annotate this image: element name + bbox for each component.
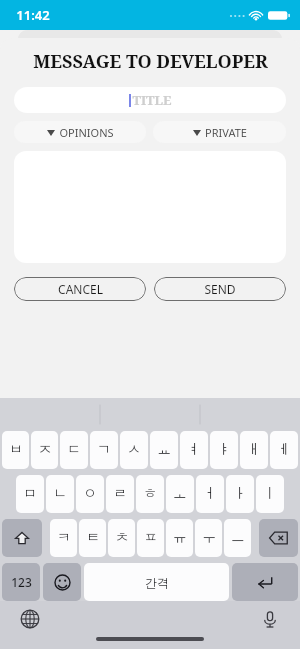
staticText: ㅓ bbox=[203, 485, 217, 503]
button[interactable]: CANCEL bbox=[14, 277, 146, 301]
button[interactable]: Change language bbox=[20, 609, 40, 629]
button[interactable]: ㅠ bbox=[166, 519, 193, 557]
staticText: ㄱ bbox=[97, 441, 111, 459]
button[interactable]: ㅁ bbox=[16, 475, 44, 513]
staticText: CANCEL bbox=[58, 281, 103, 297]
button[interactable]: ㅗ bbox=[166, 475, 194, 513]
button[interactable]: Emoji bbox=[43, 563, 81, 601]
staticText: ㅡ bbox=[231, 529, 245, 547]
button[interactable]: 간격 bbox=[84, 563, 229, 601]
staticText: MESSAGE TO DEVELOPER bbox=[33, 49, 268, 74]
button[interactable]: ㅔ bbox=[270, 431, 298, 469]
staticText: ㅍ bbox=[144, 529, 158, 547]
button[interactable]: ㅕ bbox=[180, 431, 208, 469]
button[interactable]: PRIVATE bbox=[153, 121, 286, 143]
staticText: ㅅ bbox=[127, 441, 141, 459]
staticText: ㅊ bbox=[115, 529, 129, 547]
button[interactable]: ㄴ bbox=[46, 475, 74, 513]
button[interactable]: ㅓ bbox=[196, 475, 224, 513]
staticText: ㅠ bbox=[173, 529, 187, 547]
button[interactable]: ㅎ bbox=[136, 475, 164, 513]
staticText: ㄴ bbox=[53, 485, 67, 503]
staticText: 123 bbox=[11, 574, 32, 590]
staticText: ㅌ bbox=[86, 529, 100, 547]
button[interactable]: ㅡ bbox=[224, 519, 251, 557]
staticText: 간격 bbox=[145, 575, 169, 590]
button[interactable]: Shift bbox=[2, 519, 42, 557]
button[interactable]: Voice input bbox=[260, 609, 280, 629]
staticText: ㅣ bbox=[263, 485, 277, 503]
button[interactable]: Backspace bbox=[259, 519, 298, 557]
staticText: ㅔ bbox=[277, 441, 291, 459]
button[interactable]: ㅛ bbox=[150, 431, 178, 469]
button[interactable]: ㅌ bbox=[79, 519, 106, 557]
button[interactable]: TITLE bbox=[14, 87, 286, 113]
button[interactable]: ㄱ bbox=[90, 431, 118, 469]
staticText: ㅛ bbox=[157, 441, 171, 459]
staticText: ㅗ bbox=[173, 485, 187, 503]
staticText: ㅏ bbox=[233, 485, 247, 503]
staticText: ㅎ bbox=[143, 485, 157, 503]
button[interactable]: ㅋ bbox=[50, 519, 77, 557]
staticText: ㅈ bbox=[38, 441, 52, 459]
button[interactable]: ㅑ bbox=[210, 431, 238, 469]
staticText: PRIVATE bbox=[205, 125, 247, 140]
staticText: ㅁ bbox=[23, 485, 37, 503]
button[interactable]: ㅜ bbox=[195, 519, 222, 557]
button[interactable]: OPINIONS bbox=[14, 121, 146, 143]
staticText: ㅇ bbox=[83, 485, 97, 503]
staticText: 11:42 bbox=[16, 6, 50, 24]
button[interactable]: ㅇ bbox=[76, 475, 104, 513]
button[interactable]: ㅅ bbox=[120, 431, 148, 469]
button[interactable]: ㅣ bbox=[256, 475, 284, 513]
staticText: ㅂ bbox=[9, 441, 23, 459]
staticText: TITLE bbox=[132, 91, 172, 109]
button[interactable]: ㄹ bbox=[106, 475, 134, 513]
button[interactable]: ㅍ bbox=[137, 519, 164, 557]
button[interactable]: ㅊ bbox=[108, 519, 135, 557]
button[interactable]: 123 bbox=[2, 563, 40, 601]
button[interactable]: Enter bbox=[232, 563, 298, 601]
button[interactable]: ㅏ bbox=[226, 475, 254, 513]
staticText: ㅜ bbox=[202, 529, 216, 547]
button[interactable]: ㅈ bbox=[31, 431, 58, 469]
staticText: ㄷ bbox=[67, 441, 81, 459]
staticText: ㅋ bbox=[57, 529, 71, 547]
staticText: ㅕ bbox=[187, 441, 201, 459]
staticText: OPINIONS bbox=[59, 125, 114, 140]
staticText: SEND bbox=[204, 281, 236, 297]
button[interactable]: ㅐ bbox=[240, 431, 268, 469]
staticText: ㅑ bbox=[217, 441, 231, 459]
staticText: ㄹ bbox=[113, 485, 127, 503]
staticText: ㅐ bbox=[247, 441, 261, 459]
button[interactable]: SEND bbox=[154, 277, 286, 301]
button[interactable]: ㄷ bbox=[60, 431, 88, 469]
button[interactable]: ㅂ bbox=[2, 431, 29, 469]
